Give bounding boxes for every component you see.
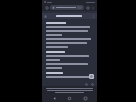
button[interactable]: Home — [66, 95, 73, 102]
button[interactable]: Copy — [89, 74, 94, 79]
button[interactable] — [50, 5, 84, 10]
button[interactable]: Tabs — [44, 5, 49, 10]
button[interactable]: Edit — [84, 82, 88, 86]
button[interactable]: More options — [90, 5, 95, 10]
button[interactable]: Recent apps — [82, 95, 89, 102]
button[interactable]: Back — [51, 95, 58, 102]
button[interactable] — [42, 13, 97, 19]
button[interactable]: Send — [90, 82, 94, 86]
button[interactable]: Share — [85, 5, 90, 10]
